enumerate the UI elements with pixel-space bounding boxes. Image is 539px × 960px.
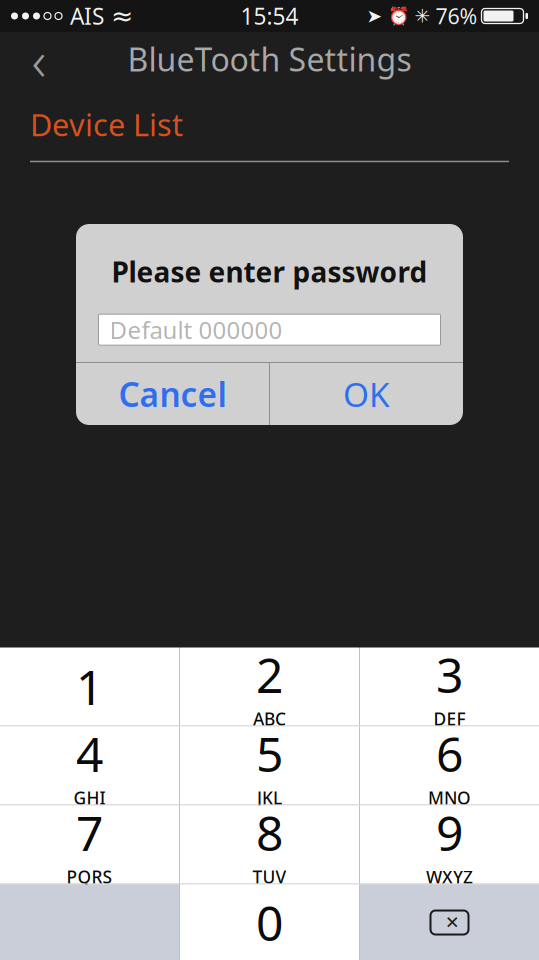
button[interactable]: Cancel bbox=[76, 363, 269, 425]
staticText: OK bbox=[343, 372, 390, 416]
staticText: 3 bbox=[436, 643, 463, 706]
staticText: 5 bbox=[256, 722, 283, 785]
button[interactable]: 6 bbox=[360, 726, 539, 804]
button[interactable]: 3 bbox=[360, 647, 539, 725]
staticText: WXYZ bbox=[426, 865, 473, 888]
staticText: 6 bbox=[436, 722, 463, 785]
staticText: JKL bbox=[257, 786, 282, 809]
staticText: TUV bbox=[252, 865, 286, 888]
staticText: 1 bbox=[76, 655, 103, 718]
staticText: Default 000000 bbox=[109, 314, 282, 346]
staticText: 76% bbox=[435, 2, 477, 30]
button[interactable]: Back bbox=[12, 34, 66, 84]
button[interactable]: 9 bbox=[360, 805, 539, 883]
staticText: 9 bbox=[436, 801, 463, 864]
staticText: 8 bbox=[256, 801, 283, 864]
button[interactable]: Delete bbox=[360, 884, 539, 960]
staticText: PQRS bbox=[66, 865, 112, 888]
staticText: AIS bbox=[70, 1, 104, 31]
button[interactable]: OK bbox=[270, 363, 463, 425]
button[interactable]: 1 bbox=[0, 647, 179, 725]
staticText: Device List bbox=[30, 104, 183, 145]
staticText: 7 bbox=[76, 801, 103, 864]
staticText: ⏰ bbox=[387, 6, 409, 26]
button[interactable]: 7 bbox=[0, 805, 179, 883]
staticText: ✳ bbox=[414, 5, 430, 27]
staticText: ➤ bbox=[366, 5, 382, 27]
staticText: GHI bbox=[73, 786, 105, 809]
staticText: 4 bbox=[76, 722, 103, 785]
staticText: 15:54 bbox=[240, 1, 298, 31]
staticText: 2 bbox=[256, 643, 283, 706]
button[interactable]: 0 bbox=[180, 884, 359, 960]
staticText: ≈ bbox=[111, 1, 133, 31]
button[interactable]: 8 bbox=[180, 805, 359, 883]
staticText: MNO bbox=[428, 786, 471, 809]
staticText: 0 bbox=[256, 891, 283, 954]
staticText: ✕ bbox=[445, 913, 460, 932]
button[interactable]: 2 bbox=[180, 647, 359, 725]
staticText: ‹ bbox=[31, 22, 46, 96]
staticText: DEF bbox=[433, 707, 465, 730]
staticText: Cancel bbox=[118, 372, 226, 416]
button[interactable]: 5 bbox=[180, 726, 359, 804]
button[interactable]: 4 bbox=[0, 726, 179, 804]
staticText: Please enter password bbox=[111, 253, 427, 290]
staticText: ABC bbox=[253, 707, 286, 730]
staticText: BlueTooth Settings bbox=[127, 38, 411, 80]
